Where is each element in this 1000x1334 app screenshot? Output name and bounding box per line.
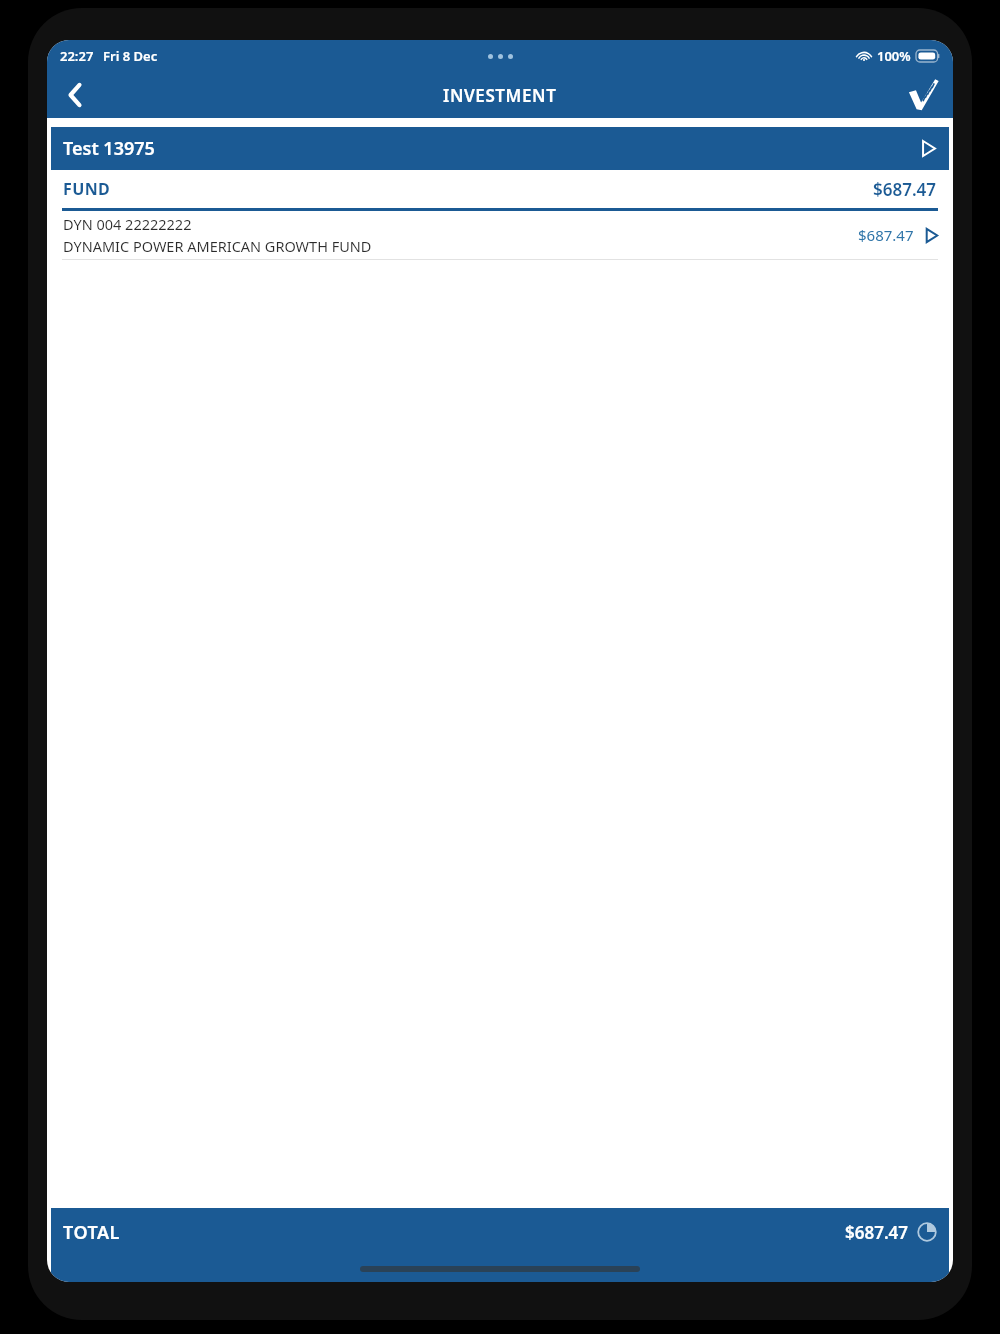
button[interactable]: Test 13975 <box>51 127 949 170</box>
staticText: $687.47 <box>873 178 937 201</box>
staticText: DYN 004 22222222 <box>63 214 192 234</box>
staticText: INVESTMENT <box>443 84 557 107</box>
staticText: Fri 8 Dec <box>103 47 158 65</box>
staticText: 22:27 <box>60 47 94 65</box>
other: Chart <box>917 1222 937 1242</box>
other: Details <box>924 228 939 243</box>
staticText: Test 13975 <box>63 136 155 161</box>
other: Details <box>920 140 937 157</box>
staticText: $687.47 <box>858 225 914 245</box>
button[interactable]: TOTAL <box>51 1208 949 1256</box>
staticText: $687.47 <box>845 1221 909 1244</box>
staticText: TOTAL <box>63 1220 120 1245</box>
button[interactable]: Logo <box>893 72 953 118</box>
staticText: DYNAMIC POWER AMERICAN GROWTH FUND <box>63 236 372 256</box>
staticText: 100% <box>877 47 911 65</box>
button[interactable]: Back <box>47 72 103 118</box>
button[interactable]: DYN 004 22222222 <box>47 211 953 260</box>
staticText: FUND <box>63 178 111 200</box>
